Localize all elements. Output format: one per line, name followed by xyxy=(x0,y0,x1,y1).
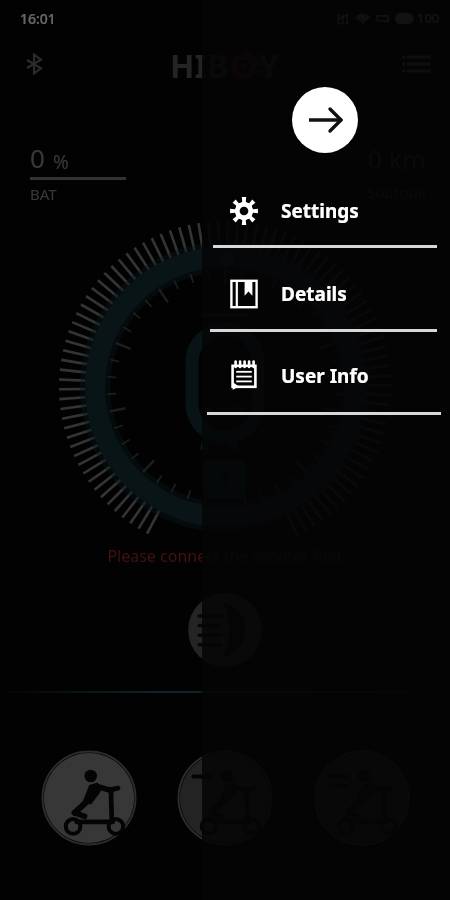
staticText: 0 xyxy=(30,140,45,175)
staticText: Please connect the scooter first xyxy=(107,545,343,567)
staticText: Details xyxy=(281,281,347,307)
button[interactable]: Speed mode 2 xyxy=(177,750,273,846)
staticText: 16:01 xyxy=(20,9,56,28)
button[interactable]: Settings xyxy=(207,185,445,237)
button[interactable]: Speed mode 1 xyxy=(41,750,137,846)
button[interactable]: Headlight xyxy=(188,593,262,667)
staticText: Settings xyxy=(281,198,359,224)
button[interactable]: Bluetooth xyxy=(16,46,52,82)
staticText: BAT xyxy=(30,184,57,204)
button[interactable]: User Info xyxy=(207,350,445,402)
staticText: 100 xyxy=(417,9,440,27)
button[interactable]: Close menu xyxy=(292,87,358,153)
staticText: Km/h xyxy=(206,400,245,420)
staticText: % xyxy=(53,149,69,175)
staticText: HIB xyxy=(170,44,229,88)
button[interactable]: Details xyxy=(207,268,445,320)
staticText: User Info xyxy=(281,363,369,389)
button[interactable]: Menu xyxy=(396,44,436,84)
